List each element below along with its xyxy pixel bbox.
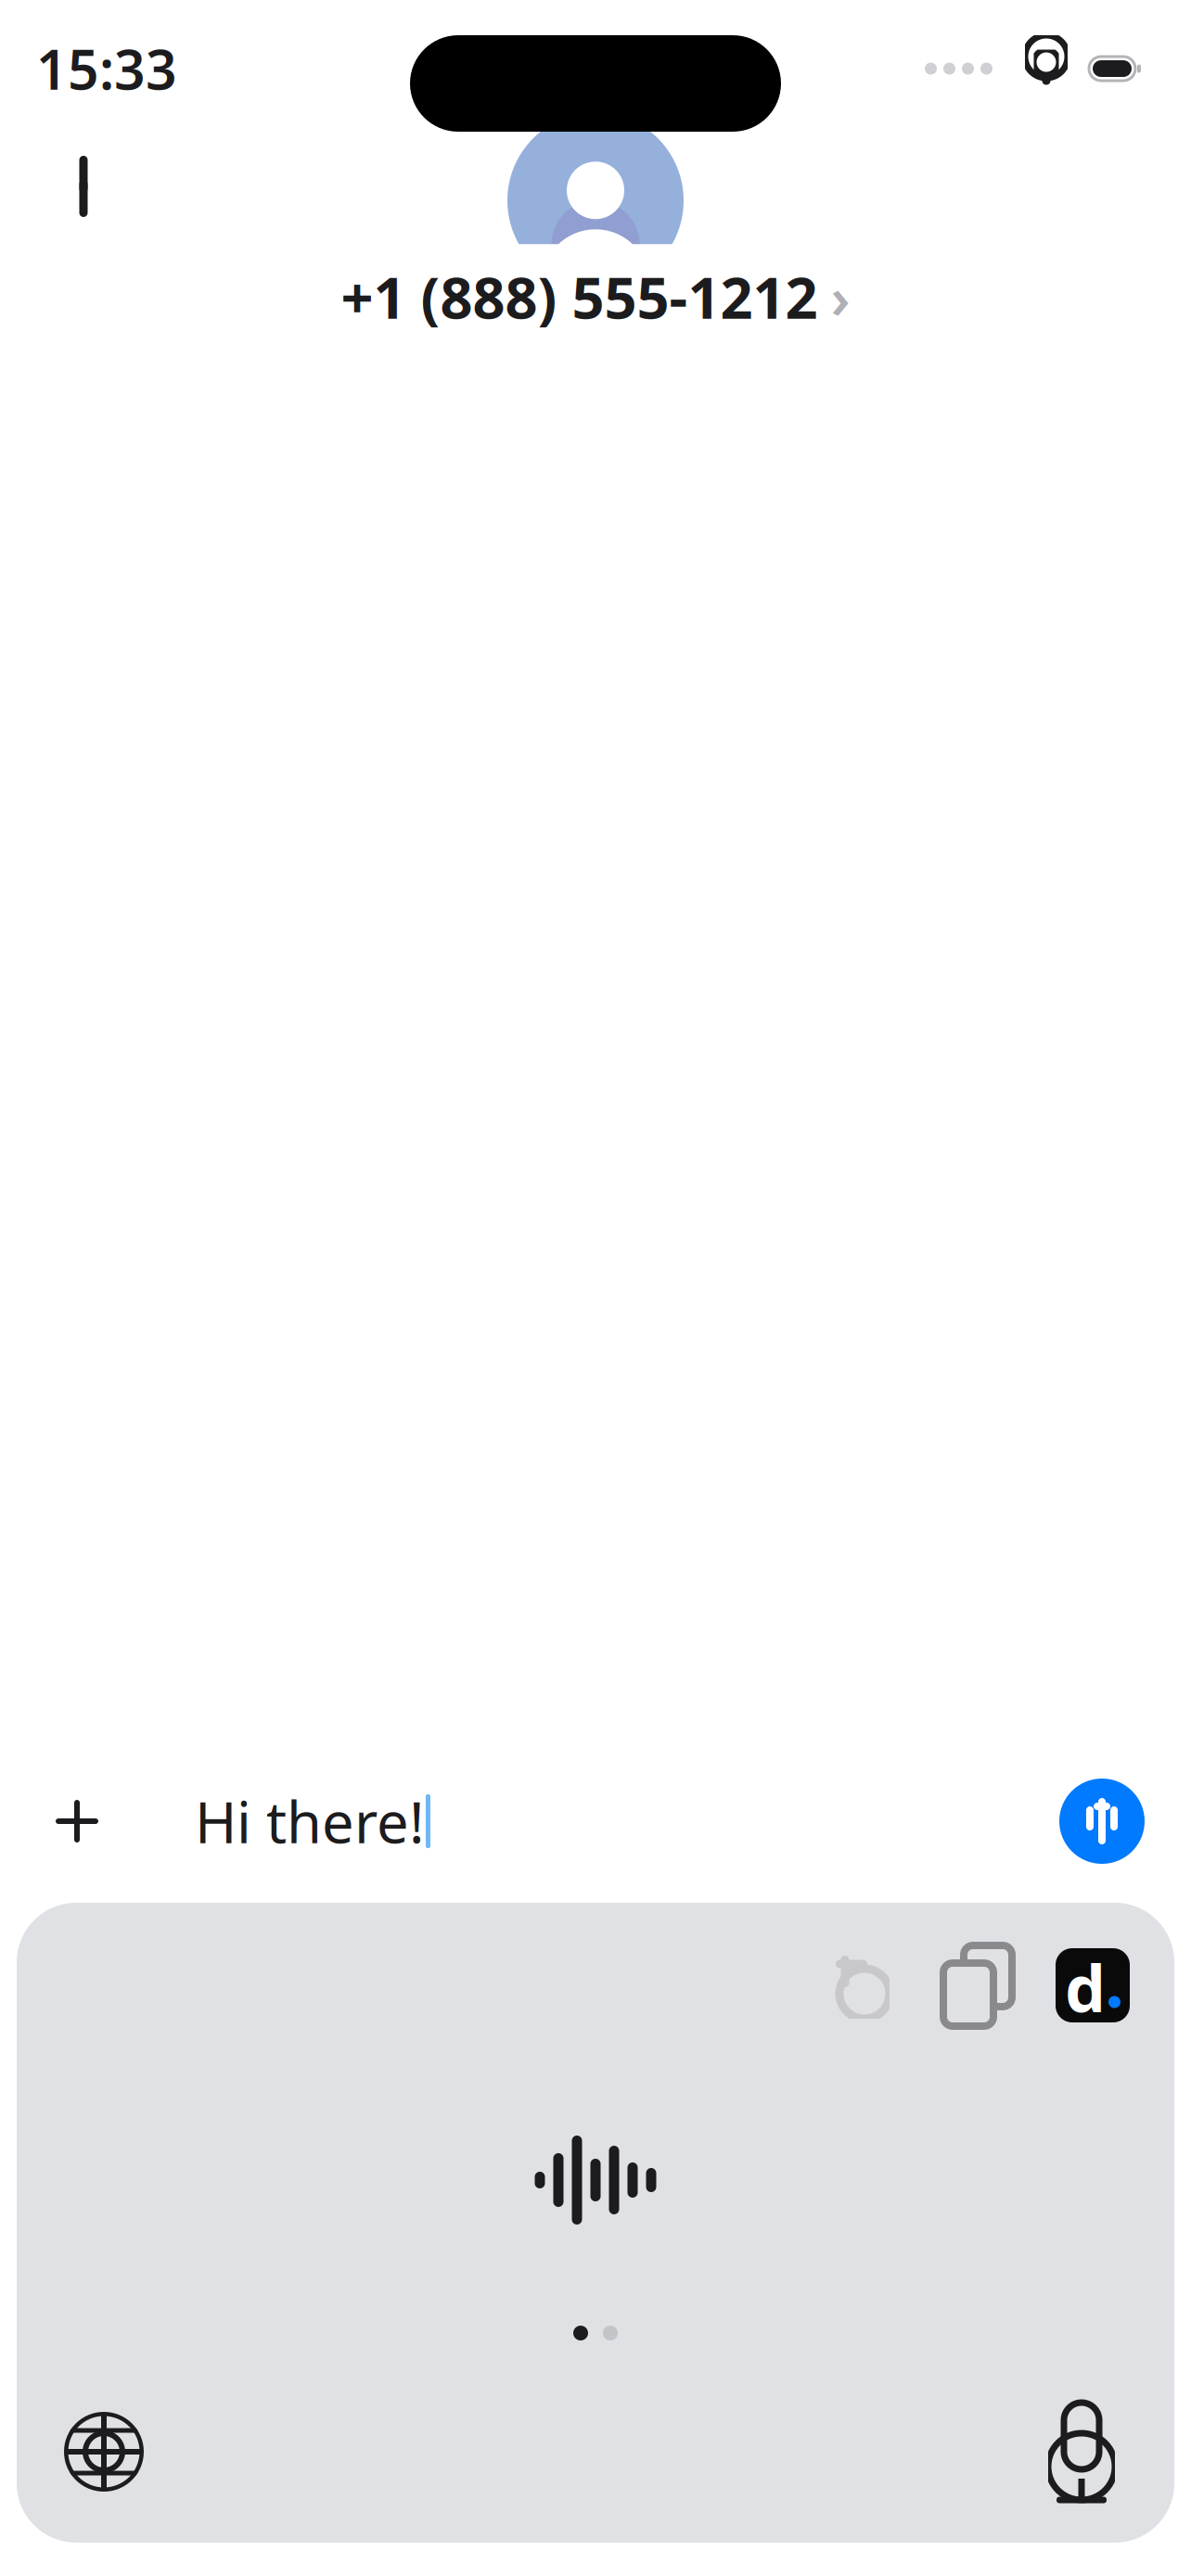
- staticText: Hi there!: [195, 1783, 424, 1859]
- button[interactable]: Undo: [818, 1945, 898, 2025]
- button[interactable]: Copy: [933, 1936, 1022, 2034]
- button[interactable]: Add attachment: [22, 1766, 132, 1876]
- button[interactable]: +1 (888) 555-1212: [313, 244, 878, 349]
- staticText: 15:33: [36, 32, 177, 105]
- button[interactable]: Back: [33, 130, 147, 243]
- button[interactable]: Change keyboard language: [45, 2392, 163, 2511]
- button[interactable]: Dictation: [1022, 2392, 1141, 2511]
- staticText: ›: [831, 259, 850, 334]
- button[interactable]: Dashlane: [1056, 1948, 1130, 2022]
- button[interactable]: Hi there!: [150, 1764, 1159, 1879]
- staticText: d: [1065, 1945, 1106, 2030]
- staticText: +1 (888) 555-1212: [341, 259, 818, 334]
